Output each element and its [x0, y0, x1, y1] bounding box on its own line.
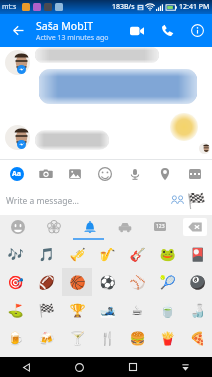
- button[interactable]: Stickers: [90, 160, 120, 187]
- staticText: 🐸: [159, 247, 176, 262]
- staticText: 🎺: [69, 247, 86, 262]
- button[interactable]: [35, 130, 109, 150]
- button[interactable]: ⛳: [0, 296, 31, 324]
- staticText: 🍵: [159, 303, 176, 318]
- staticText: Saša MobIT: [36, 19, 94, 33]
- button[interactable]: Text formatting: [2, 160, 31, 187]
- staticText: 🎿: [99, 303, 116, 318]
- staticText: Aa: [12, 169, 22, 179]
- button[interactable]: 🍻: [31, 324, 62, 352]
- staticText: Write a message…: [6, 195, 79, 207]
- staticText: 🍻: [38, 331, 55, 346]
- staticText: ⛳: [7, 303, 24, 318]
- button[interactable]: Home: [53, 357, 106, 377]
- button[interactable]: Gallery: [60, 160, 90, 187]
- button[interactable]: ⚽: [92, 268, 122, 296]
- button[interactable]: 🏀: [62, 268, 92, 296]
- button[interactable]: Friends: [168, 192, 186, 210]
- button[interactable]: 🍺: [0, 324, 31, 352]
- button[interactable]: 🍔: [122, 324, 152, 352]
- button[interactable]: Symbols: [142, 215, 177, 238]
- button[interactable]: 🎸: [122, 240, 152, 268]
- button[interactable]: Write a message…: [6, 195, 168, 207]
- staticText: 🍕: [189, 331, 206, 346]
- button[interactable]: Smileys: [0, 215, 36, 238]
- staticText: 🍴: [99, 331, 116, 346]
- button[interactable]: 🎿: [92, 296, 122, 324]
- button[interactable]: 🍟: [152, 324, 182, 352]
- staticText: 123: [156, 223, 165, 230]
- staticText: ⚽: [99, 275, 116, 290]
- button[interactable]: 🍶: [182, 296, 212, 324]
- button[interactable]: 🎺: [62, 240, 92, 268]
- button[interactable]: Info: [182, 14, 212, 47]
- staticText: 🎸: [129, 247, 146, 262]
- button[interactable]: 🍕: [182, 324, 212, 352]
- staticText: 🎵: [38, 247, 55, 262]
- staticText: 🍔: [129, 331, 146, 346]
- button[interactable]: 🏁: [31, 296, 62, 324]
- staticText: 12:41 PM: [179, 2, 210, 12]
- button[interactable]: 🎴: [182, 240, 212, 268]
- button[interactable]: 🍵: [152, 296, 182, 324]
- staticText: 🎱: [189, 275, 206, 290]
- button[interactable]: [35, 47, 159, 63]
- button[interactable]: Voice message: [120, 160, 150, 187]
- button[interactable]: Send sticker: [186, 191, 206, 211]
- button[interactable]: 🎯: [0, 268, 31, 296]
- button[interactable]: [39, 69, 197, 104]
- button[interactable]: 🍴: [92, 324, 122, 352]
- button[interactable]: Travel: [107, 215, 142, 238]
- staticText: 🍺: [7, 331, 24, 346]
- button[interactable]: ⚾: [122, 268, 152, 296]
- button[interactable]: Back: [0, 357, 53, 377]
- button[interactable]: 🎾: [152, 268, 182, 296]
- button[interactable]: 🎷: [92, 240, 122, 268]
- button[interactable]: 🍸: [62, 324, 92, 352]
- button[interactable]: Location: [150, 160, 180, 187]
- staticText: 183B/s: [112, 2, 135, 12]
- button[interactable]: 🏆: [62, 296, 92, 324]
- button[interactable]: Call: [152, 14, 182, 47]
- staticText: 🏆: [69, 303, 86, 318]
- staticText: ⚾: [129, 275, 146, 290]
- staticText: 🏁: [187, 192, 206, 210]
- staticText: ☕: [131, 303, 143, 318]
- button[interactable]: Hide keyboard: [159, 357, 212, 377]
- staticText: 🎯: [7, 275, 24, 290]
- button[interactable]: Backspace: [177, 215, 212, 238]
- staticText: 🎾: [159, 275, 176, 290]
- button[interactable]: 🎵: [31, 240, 62, 268]
- staticText: Active 13 minutes ago: [36, 33, 109, 43]
- button[interactable]: Back: [0, 14, 36, 47]
- button[interactable]: 🐸: [152, 240, 182, 268]
- staticText: 🎷: [99, 247, 116, 262]
- staticText: 🏈: [38, 275, 55, 290]
- staticText: 🍸: [69, 331, 86, 346]
- staticText: 🍶: [189, 303, 206, 318]
- button[interactable]: More: [180, 160, 210, 187]
- button[interactable]: 🎱: [182, 268, 212, 296]
- staticText: 🎶: [7, 247, 24, 262]
- button[interactable]: 🏈: [31, 268, 62, 296]
- button[interactable]: Nature: [36, 215, 72, 238]
- button[interactable]: Recents: [106, 357, 159, 377]
- button[interactable]: Saša MobIT: [36, 19, 122, 43]
- button[interactable]: Camera: [31, 160, 60, 187]
- staticText: mt:s: [2, 2, 17, 12]
- staticText: 🍟: [159, 331, 176, 346]
- staticText: 🏁: [38, 303, 55, 318]
- button[interactable]: Video call: [122, 14, 152, 47]
- button[interactable]: 🎶: [0, 240, 31, 268]
- button[interactable]: Activities: [72, 215, 107, 238]
- staticText: 🏀: [69, 275, 86, 290]
- button[interactable]: ☕: [122, 296, 152, 324]
- staticText: 🎴: [189, 247, 206, 262]
